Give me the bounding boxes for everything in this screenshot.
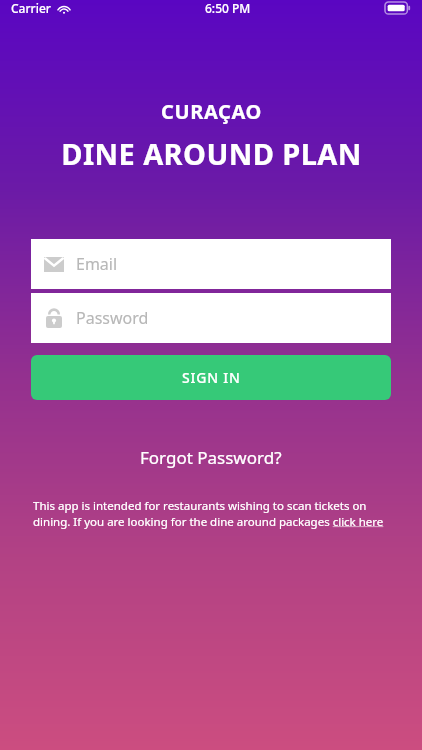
button[interactable]: Email field <box>31 239 391 289</box>
staticText: This app is intended for restaurants wis… <box>33 498 389 529</box>
staticText: 6:50 PM <box>205 0 251 16</box>
staticText: CURAÇAO <box>161 98 262 125</box>
staticText: DINE AROUND PLAN <box>61 134 362 173</box>
button[interactable]: Password field <box>31 293 391 343</box>
staticText: SIGN IN <box>182 368 241 387</box>
staticText: Carrier <box>11 0 51 16</box>
staticText: Forgot Password? <box>140 446 282 469</box>
button[interactable]: SIGN IN <box>31 355 391 400</box>
staticText: Email <box>76 253 118 275</box>
button[interactable]: Forgot Password? <box>0 442 422 473</box>
staticText: Password <box>76 307 149 329</box>
button[interactable]: This app is intended for restaurants wis… <box>33 498 389 529</box>
